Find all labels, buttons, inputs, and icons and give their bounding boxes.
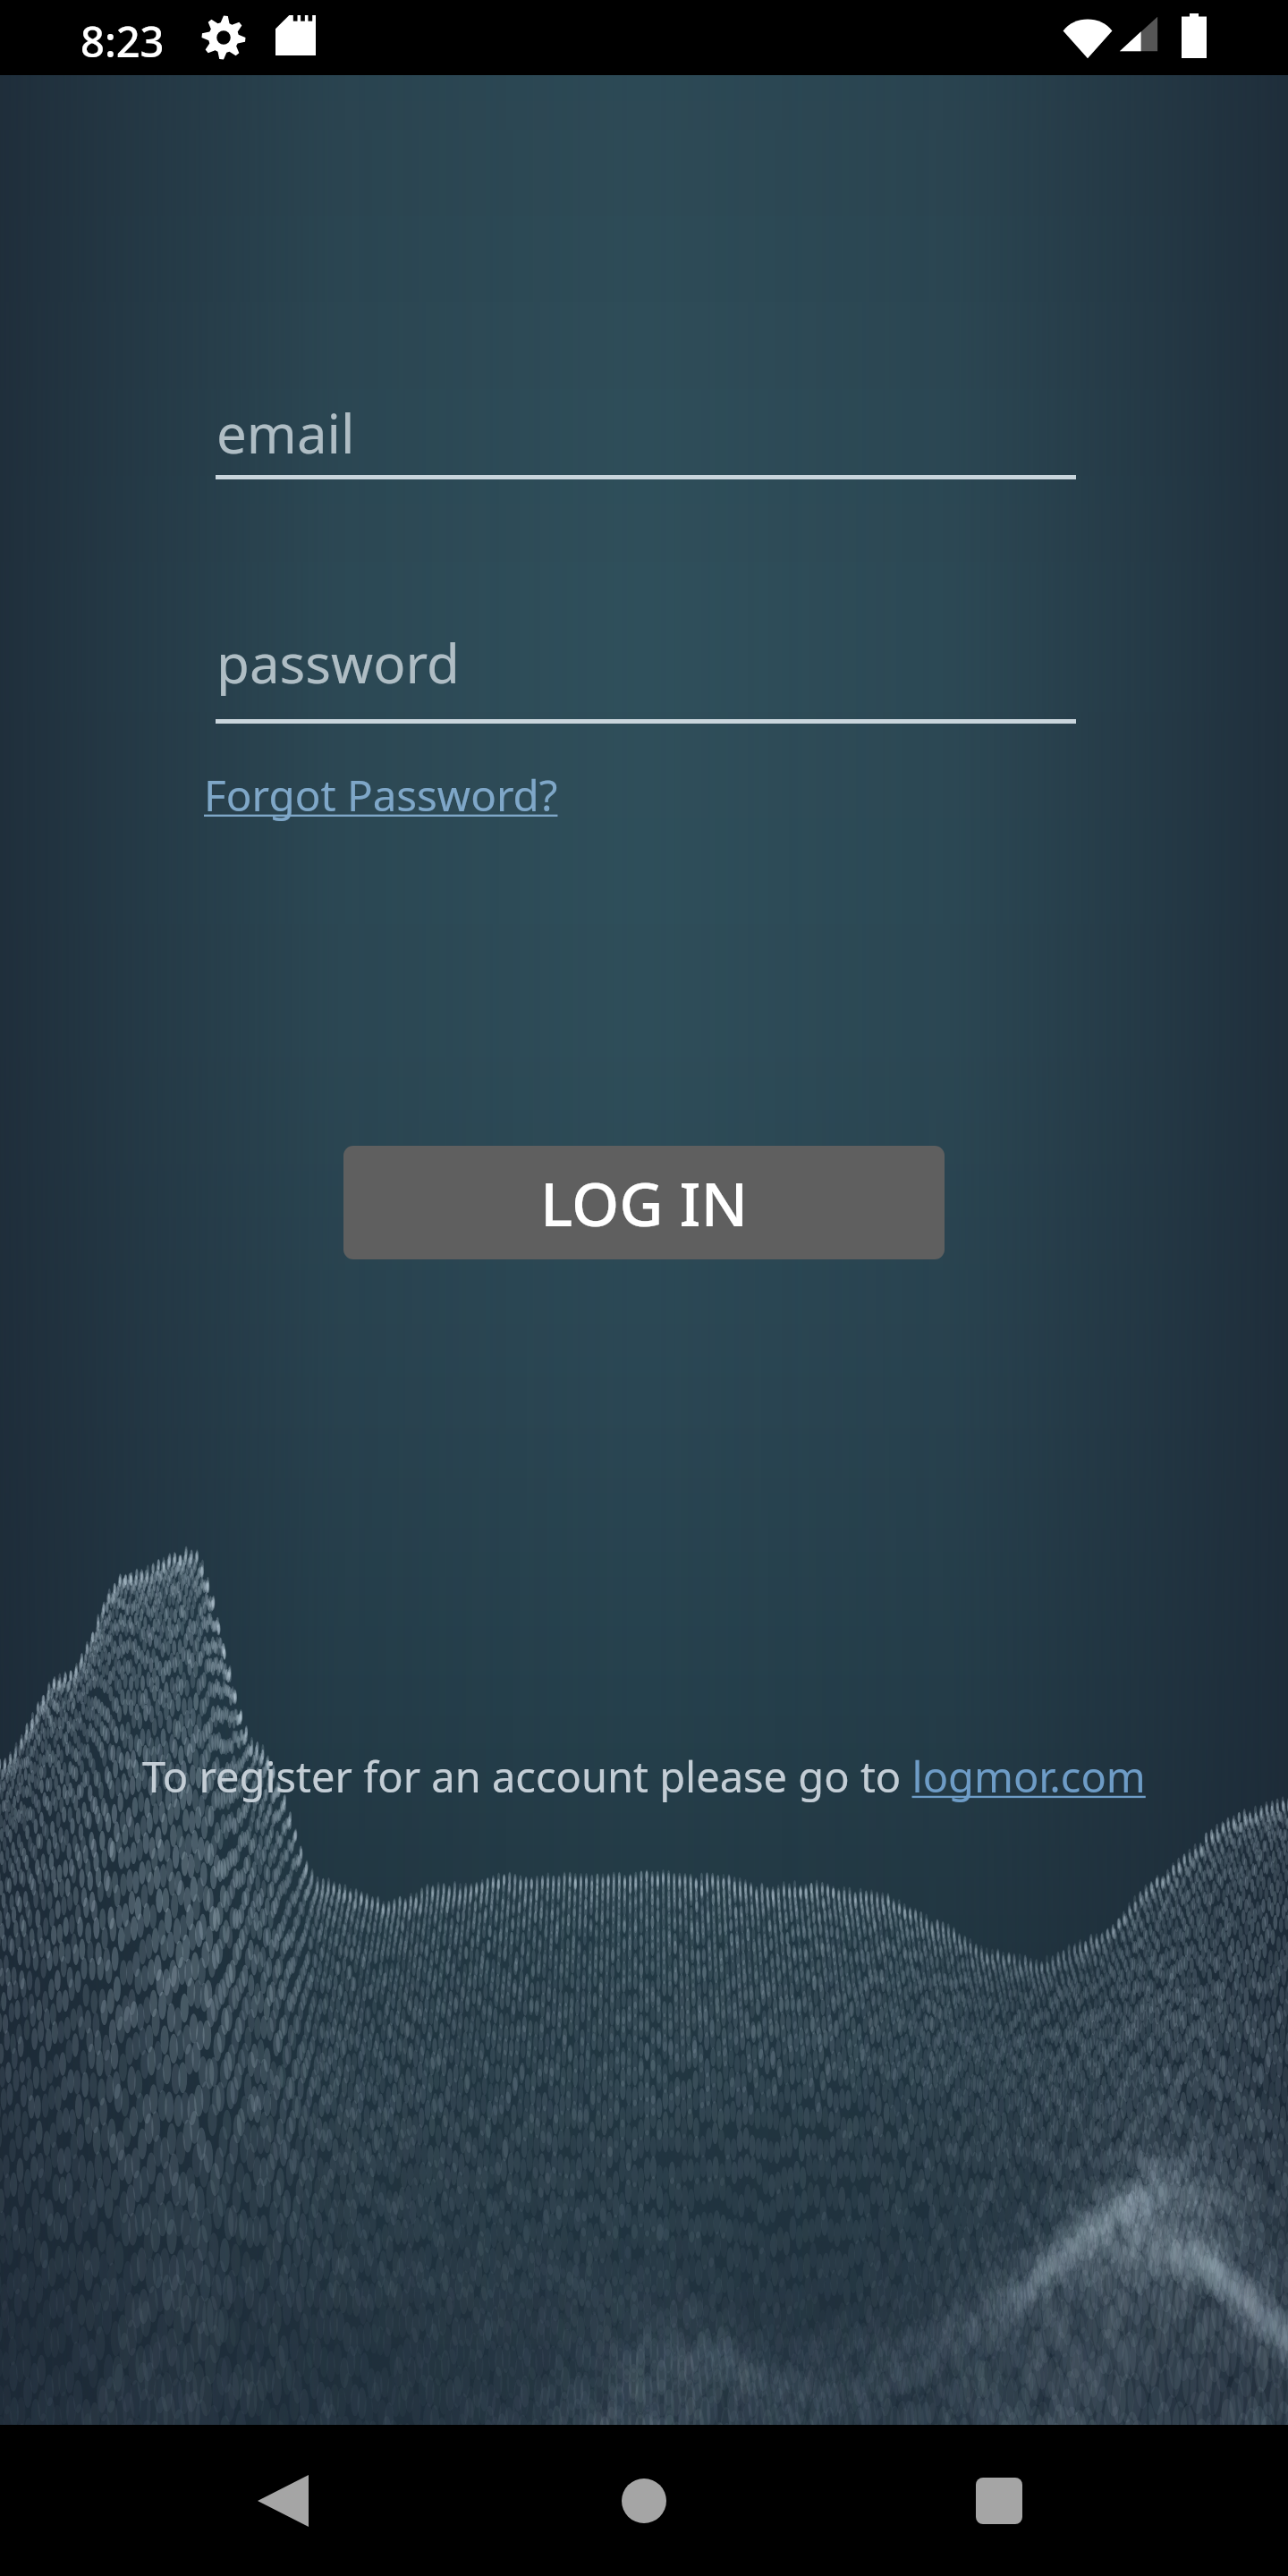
staticText: LOG IN bbox=[540, 1161, 749, 1244]
button[interactable]: To register for an account please go to … bbox=[139, 1744, 1149, 1809]
staticText: email bbox=[216, 396, 355, 470]
staticText: 8:23 bbox=[80, 13, 165, 70]
button[interactable]: Home bbox=[537, 2425, 751, 2576]
staticText: To register for an account please go to … bbox=[142, 1748, 1146, 1805]
staticText: password bbox=[216, 626, 460, 699]
staticText: Forgot Password? bbox=[204, 766, 558, 824]
button[interactable]: Forgot Password? bbox=[201, 762, 561, 827]
button[interactable]: Recent apps bbox=[892, 2425, 1106, 2576]
button[interactable]: Back bbox=[175, 2425, 390, 2576]
button[interactable]: LOG IN bbox=[343, 1146, 945, 1259]
